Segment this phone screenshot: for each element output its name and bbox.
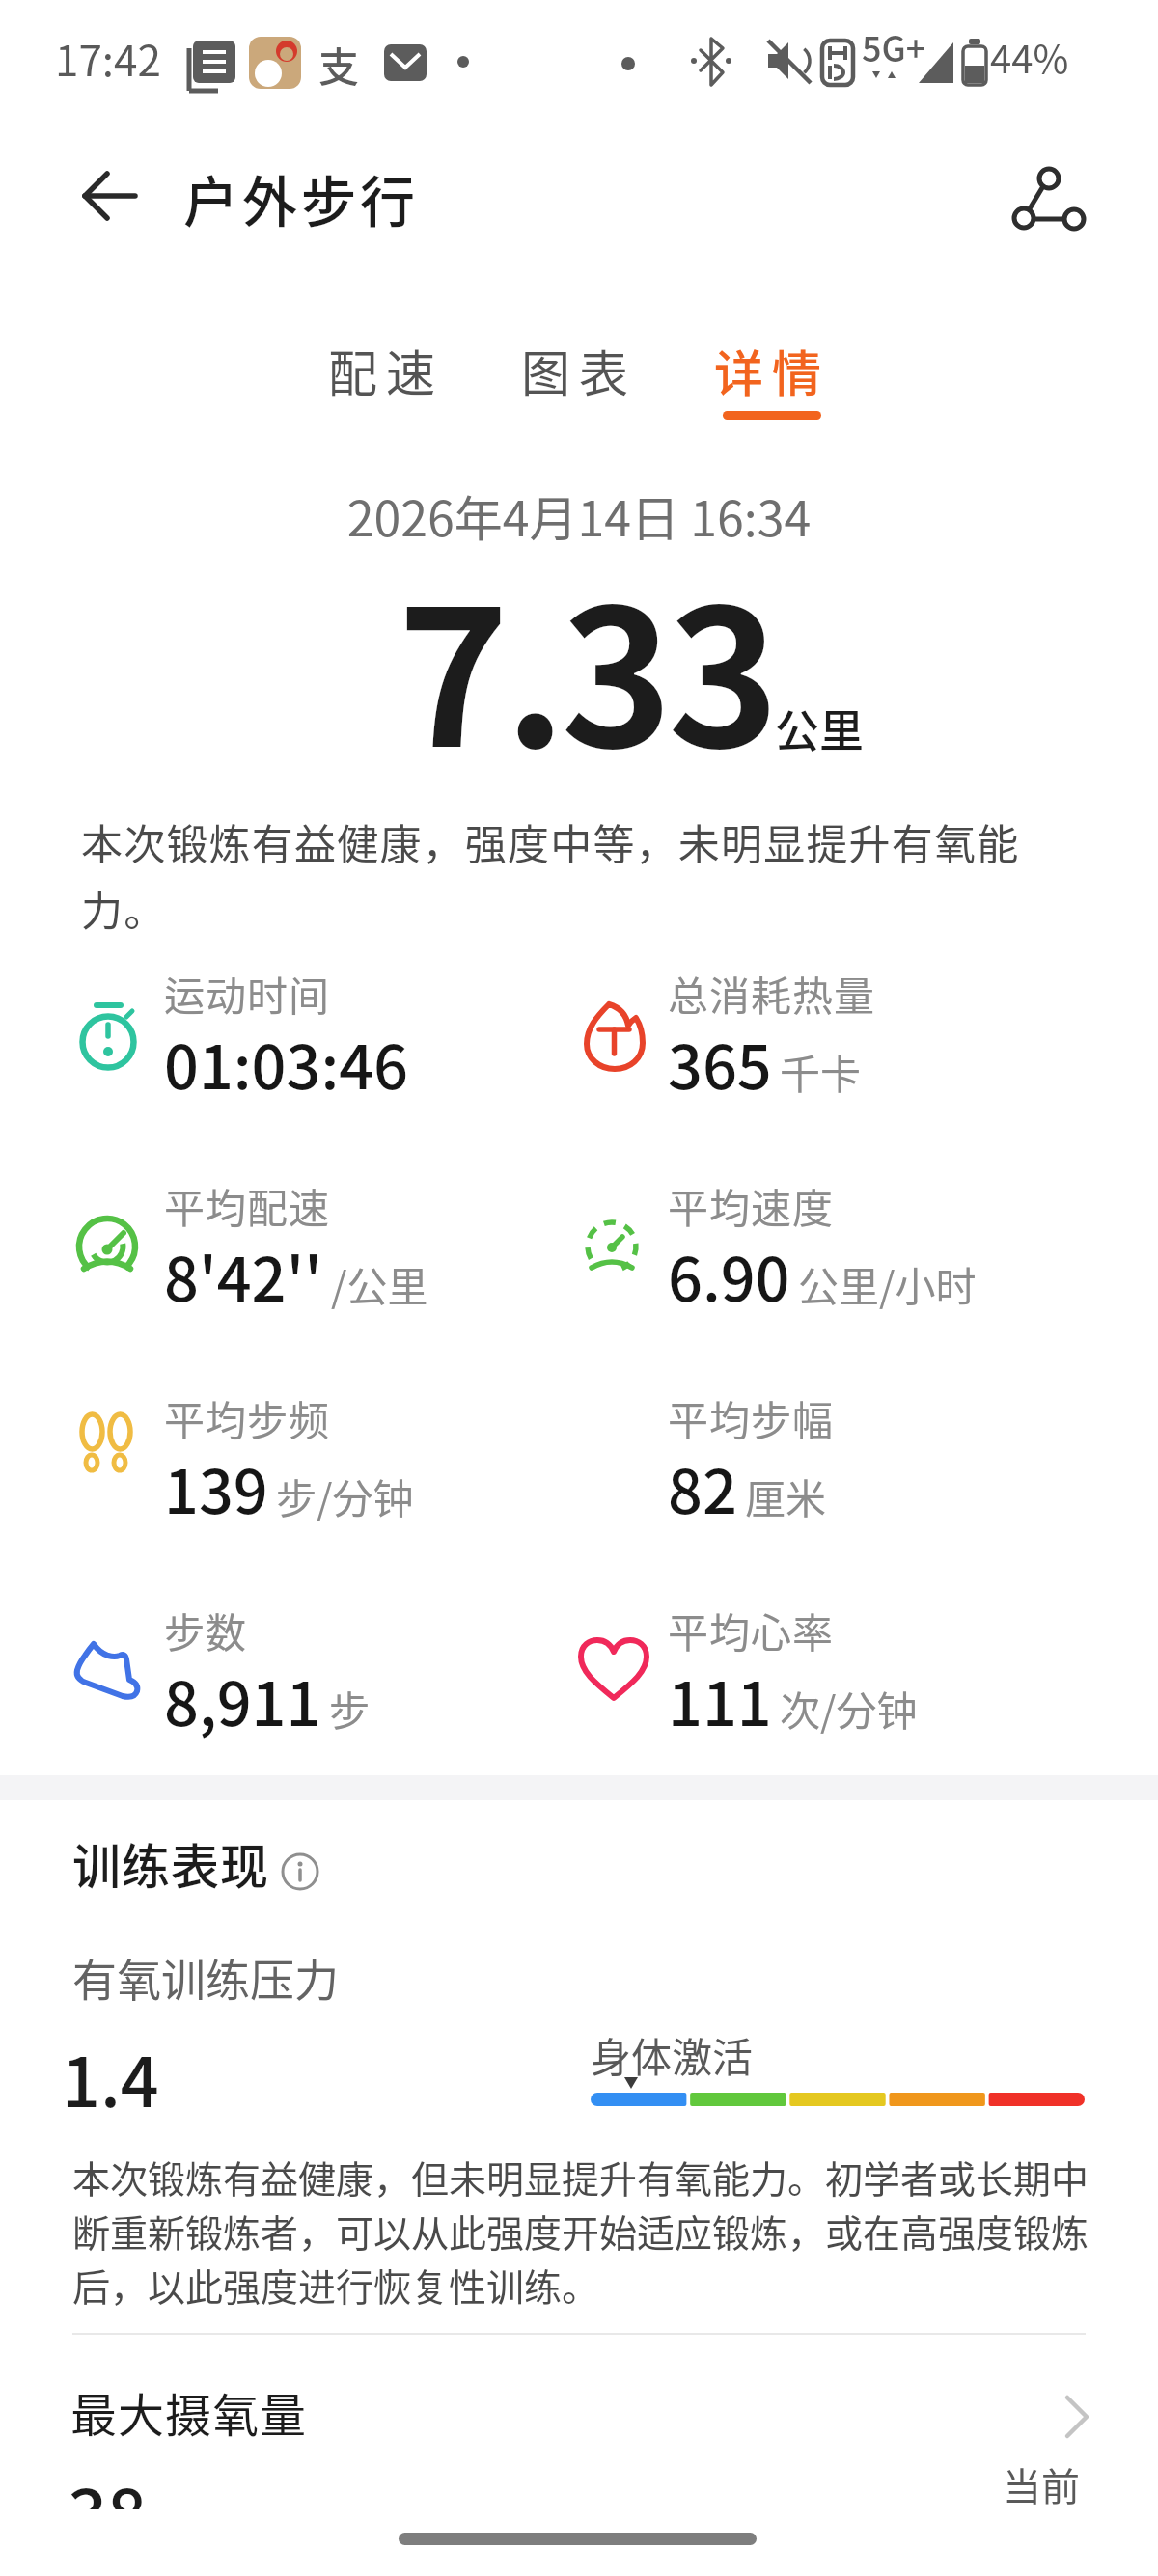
button[interactable] [58,154,154,241]
staticText: 平均步频 [164,1388,331,1447]
staticText: 平均配速 [164,1176,331,1235]
staticText: 训练表现 [72,1828,269,1898]
staticText: 17:42 [55,27,161,89]
staticText: 千卡 [780,1042,862,1101]
staticText: 平均速度 [668,1176,835,1235]
staticText: 步 [329,1679,371,1738]
staticText: 6.90 [668,1231,790,1319]
staticText: 82 [668,1443,737,1531]
staticText: 当前 [1003,2456,1080,2512]
staticText: 步数 [164,1601,248,1659]
staticText: 5G+ [862,21,926,71]
staticText: 厘米 [745,1466,827,1525]
button[interactable] [281,1852,319,1891]
staticText: 7.33 [398,528,775,802]
staticText: 总消耗热量 [668,964,876,1023]
staticText: 公里/小时 [798,1254,977,1313]
staticText: 139 [164,1443,268,1531]
button[interactable] [975,145,1081,241]
staticText: 8'42'' [164,1231,323,1319]
button[interactable]: 最大摄氧量 [58,2364,1100,2470]
staticText: 2026年4月14日 16:34 [0,480,1158,550]
staticText: 本次锻炼有益健康，强度中等，未明显提升有氧能 力。 [81,811,1020,939]
staticText: 身体激活 [591,2025,754,2084]
staticText: 01:03:46 [164,1019,409,1107]
staticText: 1.4 [62,2029,159,2126]
staticText: 365 [668,1019,772,1107]
staticText: 次/分钟 [780,1679,918,1738]
staticText: 有氧训练压力 [72,1945,339,2010]
staticText: 配速 [328,335,445,406]
staticText: 本次锻炼有益健康，但未明显提升有氧能力。初学者或长期中 断重新锻炼者，可以从此强… [72,2150,1089,2312]
staticText: 111 [668,1656,772,1743]
button[interactable]: 配速 [309,322,463,419]
staticText: 详情 [714,335,831,406]
staticText: 图表 [521,335,638,406]
staticText: /公里 [331,1254,428,1313]
staticText: 平均步幅 [668,1388,835,1447]
staticText: 平均心率 [668,1601,835,1659]
button[interactable]: 详情 [695,322,849,419]
staticText: 运动时间 [164,964,331,1023]
staticText: 户外步行 [183,158,419,238]
button[interactable]: 图表 [502,322,656,419]
staticText: 38 [68,2459,148,2560]
staticText: 44% [990,29,1069,85]
staticText: 步/分钟 [276,1466,414,1525]
staticText: 支 [318,35,360,94]
staticText: 最大摄氧量 [70,2378,308,2446]
staticText: 8,911 [164,1656,321,1743]
staticText: 公里 [775,696,864,760]
